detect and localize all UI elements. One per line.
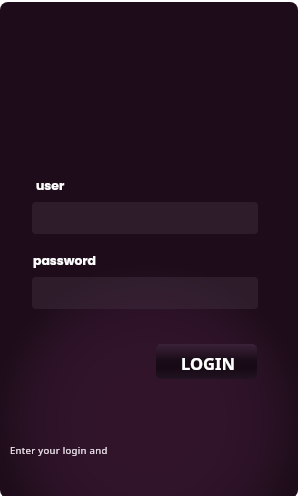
staticText: user (36, 177, 65, 194)
staticText: LOGIN (181, 352, 236, 375)
button[interactable]: LOGIN (156, 344, 257, 379)
staticText: Enter your login and (10, 444, 108, 457)
staticText: password (33, 252, 96, 269)
